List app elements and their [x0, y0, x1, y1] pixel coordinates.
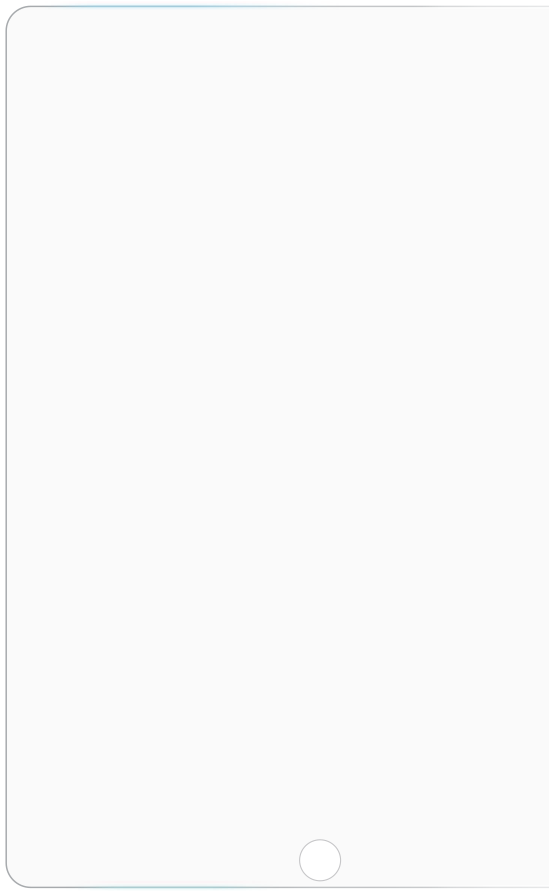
button[interactable]: Home [300, 840, 341, 881]
